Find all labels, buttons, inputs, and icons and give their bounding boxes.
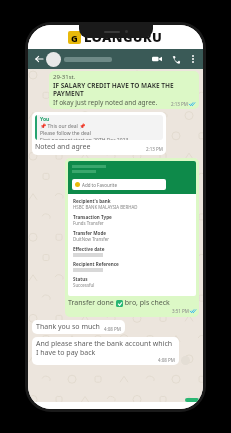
- button[interactable]: Add to Favourite: [72, 179, 166, 190]
- staticText: DuitNow Transfer: [73, 236, 110, 242]
- staticText: Transfer done: [68, 298, 116, 308]
- staticText: G: [71, 32, 78, 44]
- staticText: Transaction Type: [73, 214, 112, 220]
- staticText: bro, pls check: [123, 298, 170, 308]
- staticText: 29-31st.: [53, 73, 76, 81]
- staticText: LOANGURU: [84, 28, 163, 46]
- staticText: Noted and agree: [35, 142, 91, 152]
- staticText: Add to Favourite: [82, 182, 117, 188]
- staticText: HSBC BANK MALAYSIA BERHAD: [73, 204, 138, 210]
- staticText: Status: [73, 276, 88, 282]
- button[interactable]: Voice call: [169, 52, 183, 66]
- staticText: 4:08 PM: [158, 357, 175, 363]
- staticText: 4:08 PM: [104, 326, 121, 332]
- staticText: 📌 This our deal 📌: [40, 123, 86, 130]
- staticText: Recipient Reference: [73, 261, 119, 267]
- staticText: 2:13 PM: [146, 146, 163, 152]
- button[interactable]: More options: [187, 53, 199, 65]
- staticText: 2:13 PM: [171, 101, 188, 107]
- staticText: You: [40, 116, 50, 123]
- staticText: Successful: [73, 282, 95, 288]
- staticText: Thank you so much: [36, 322, 100, 332]
- staticText: Recipient's bank: [73, 198, 111, 204]
- staticText: First payment start on 29TH Dec 2023...: [40, 137, 133, 140]
- button[interactable]: You: [32, 112, 166, 155]
- button[interactable]: And please share the bank account which …: [32, 337, 179, 365]
- staticText: Effective date: [73, 246, 105, 252]
- staticText: IF SALARY CREDIT HAVE TO MAKE THE PAYMEN…: [53, 81, 195, 98]
- staticText: If okay just reply noted and agree.: [53, 98, 158, 107]
- button[interactable]: Thank you so much: [32, 320, 125, 334]
- staticText: Please follow the deal: [40, 130, 91, 137]
- staticText: And please share the bank account which …: [36, 339, 175, 357]
- button[interactable]: Video call: [150, 52, 164, 66]
- button[interactable]: Add to Favourite: [65, 158, 199, 317]
- staticText: 3:51 PM: [172, 308, 189, 314]
- button[interactable]: 29-31st.: [49, 71, 199, 109]
- staticText: Transfer Mode: [73, 230, 107, 236]
- staticText: Funds Transfer: [73, 220, 104, 226]
- button[interactable]: Back: [32, 52, 46, 66]
